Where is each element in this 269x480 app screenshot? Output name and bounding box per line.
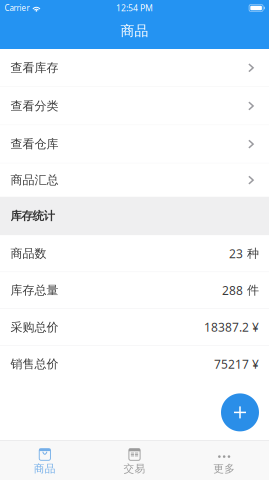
staticText: 商品 xyxy=(34,462,56,475)
button[interactable]: 查看库存 xyxy=(0,49,269,87)
staticText: 商品数 xyxy=(10,246,46,261)
button[interactable]: 交易 xyxy=(90,441,179,480)
staticText: 查看分类 xyxy=(10,98,58,113)
staticText: 更多 xyxy=(213,462,235,475)
button[interactable]: 商品汇总 xyxy=(0,163,269,197)
staticText: 商品 xyxy=(120,22,148,40)
staticText: ¥ xyxy=(249,356,259,372)
staticText: 75217 xyxy=(214,356,249,372)
button[interactable]: 更多 xyxy=(179,441,269,480)
staticText: 商品汇总 xyxy=(10,172,58,188)
staticText: 采购总价 xyxy=(10,320,58,335)
staticText: 12:54 PM xyxy=(116,2,153,14)
button[interactable]: Add product xyxy=(221,393,259,431)
button[interactable]: 商品 xyxy=(0,441,90,480)
staticText: ¥ xyxy=(249,319,259,335)
button[interactable]: 查看仓库 xyxy=(0,125,269,163)
staticText: 库存统计 xyxy=(10,209,54,223)
staticText: Carrier xyxy=(5,3,30,13)
staticText: 查看仓库 xyxy=(10,136,58,152)
staticText: 查看库存 xyxy=(10,60,58,75)
staticText: 288 xyxy=(222,282,243,298)
staticText: 交易 xyxy=(123,462,145,475)
staticText: 销售总价 xyxy=(10,356,58,372)
staticText: 种 xyxy=(243,246,259,261)
staticText: 库存总量 xyxy=(10,283,58,298)
staticText: 23 xyxy=(229,245,243,262)
staticText: 18387.2 xyxy=(204,319,249,335)
button[interactable]: 查看分类 xyxy=(0,87,269,125)
staticText: 件 xyxy=(243,283,259,298)
